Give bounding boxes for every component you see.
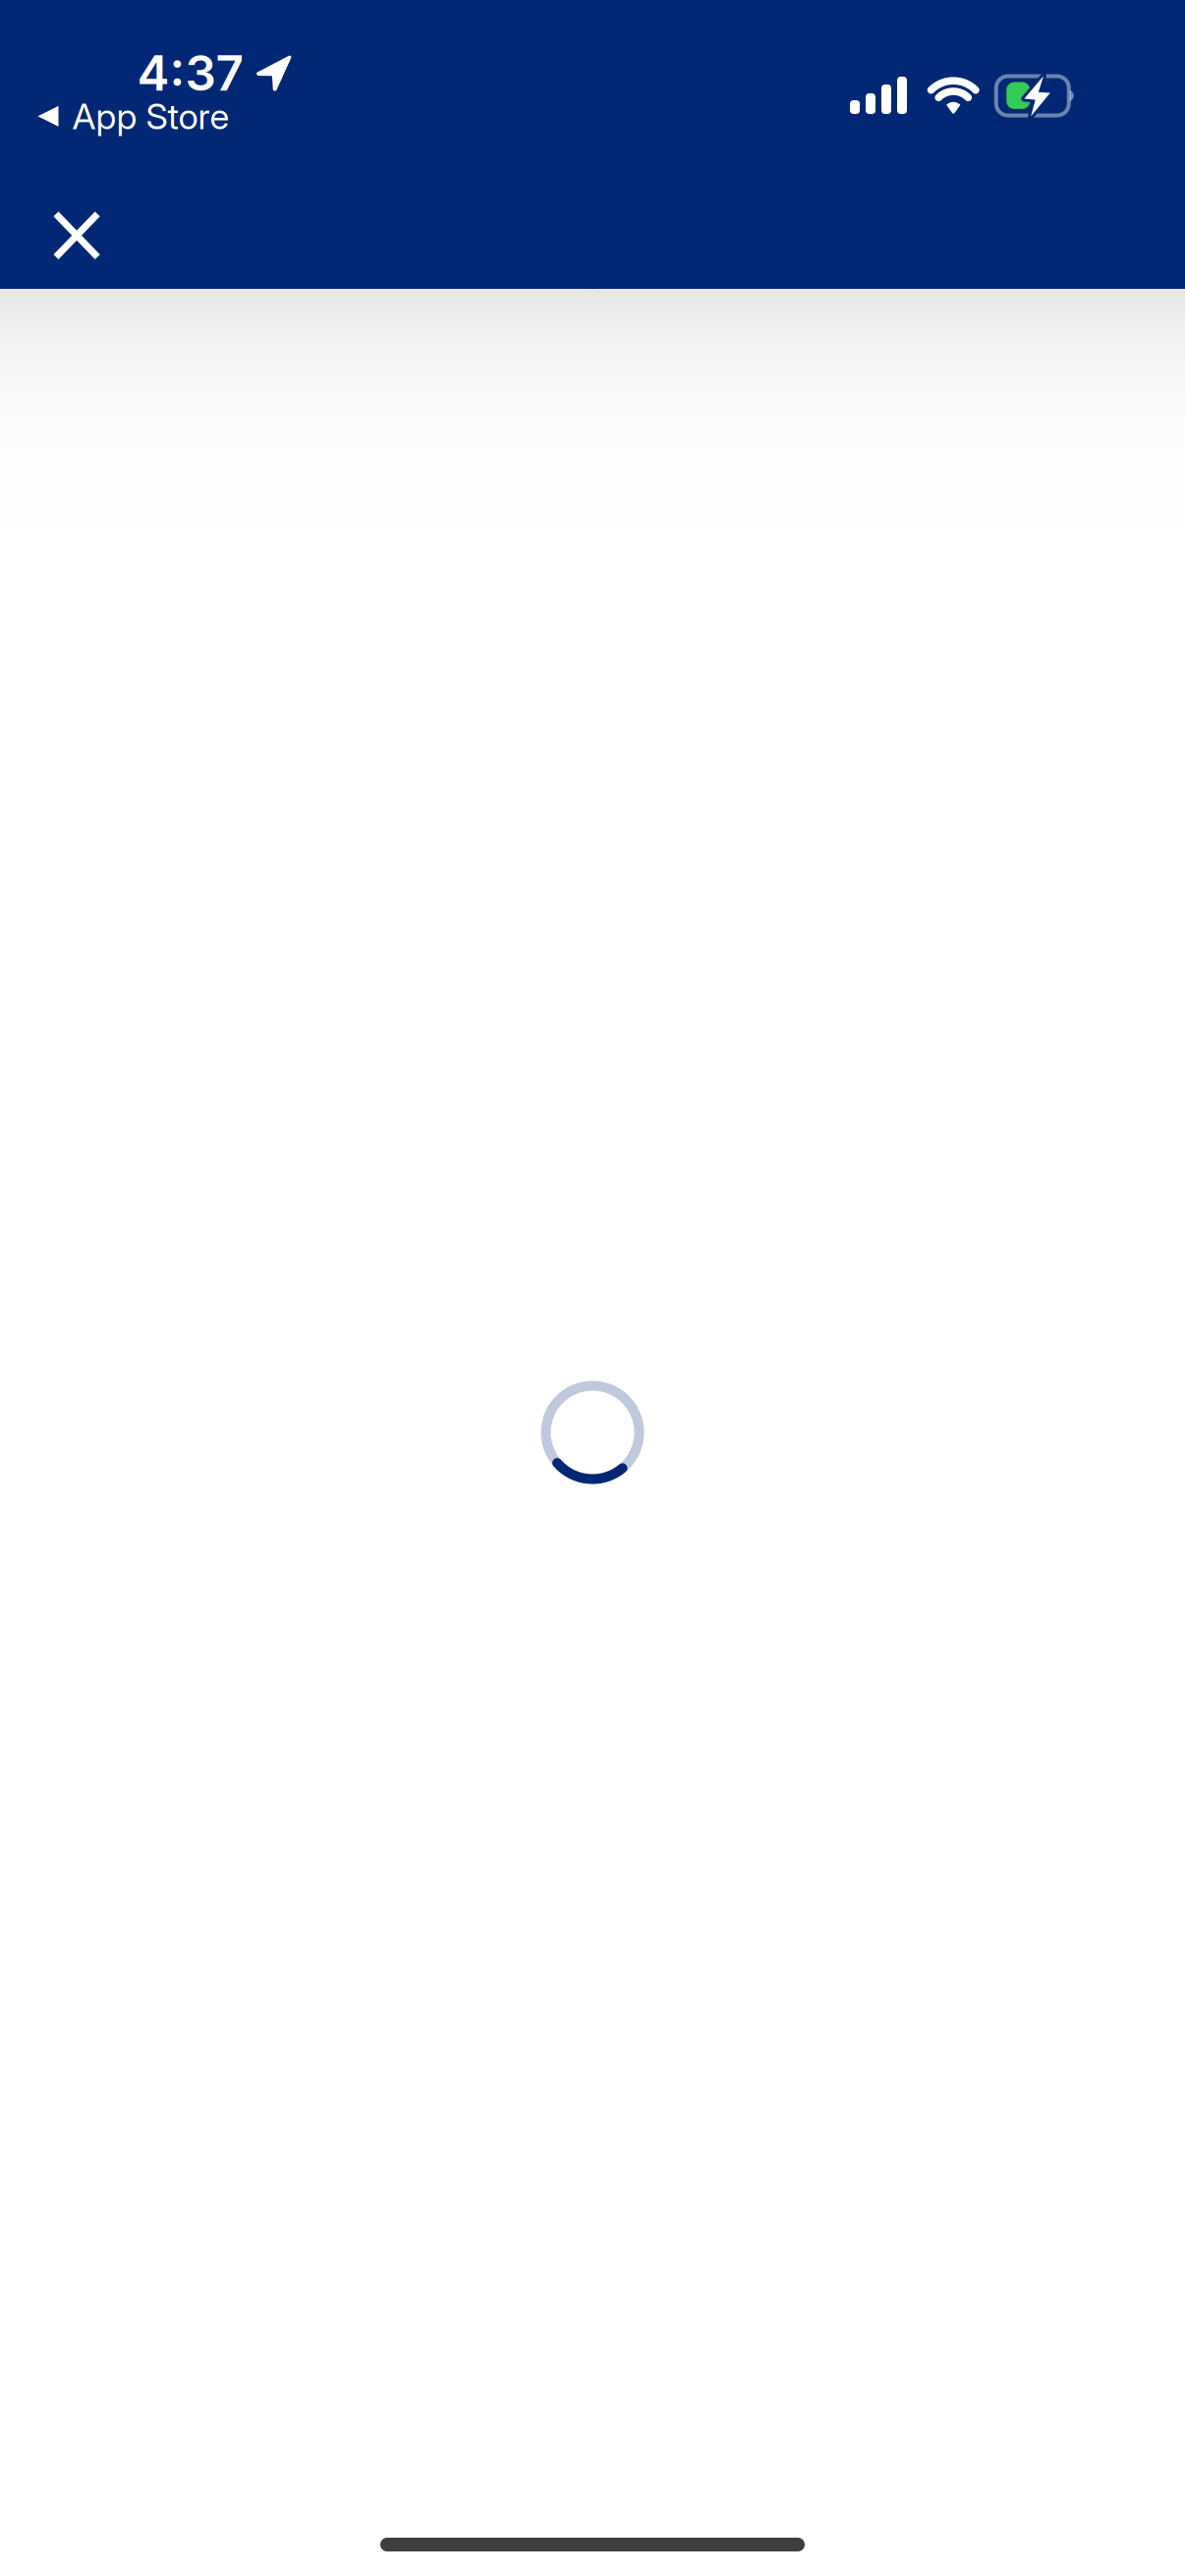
staticText: 4:37 bbox=[137, 44, 243, 102]
button[interactable]: Close bbox=[22, 180, 132, 290]
button[interactable]: App Store bbox=[34, 89, 233, 144]
staticText: App Store bbox=[72, 95, 229, 138]
